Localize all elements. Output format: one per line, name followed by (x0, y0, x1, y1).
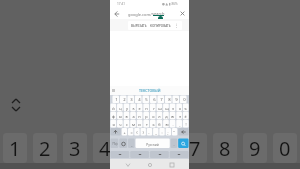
button[interactable]: ц (117, 104, 124, 112)
staticText: б (158, 122, 161, 127)
button[interactable]: = (128, 128, 134, 136)
button[interactable]: 8 (165, 96, 173, 104)
button[interactable]: ш (156, 104, 163, 112)
button[interactable]: ы (117, 112, 124, 120)
button[interactable]: о (150, 112, 157, 120)
button[interactable]: 7 (183, 133, 207, 163)
button[interactable]: ъ (182, 104, 189, 112)
button[interactable]: Русский (135, 139, 170, 149)
button[interactable]: ь (150, 120, 157, 128)
button[interactable]: ) (140, 128, 146, 136)
button[interactable]: 1 (112, 96, 120, 104)
button[interactable]: т (143, 120, 150, 128)
button[interactable]: _ (153, 128, 159, 136)
button[interactable]: 9 (243, 133, 267, 163)
button[interactable]: 4 (93, 133, 117, 163)
button[interactable]: 0 (180, 96, 188, 104)
staticText: 6 (159, 135, 171, 162)
button[interactable]: - (146, 128, 152, 136)
button[interactable]: . (169, 120, 176, 128)
button[interactable]: з (169, 104, 176, 112)
button[interactable]: Key (169, 151, 189, 158)
staticText: : (161, 130, 163, 135)
button[interactable]: , (176, 120, 183, 128)
button[interactable]: Key (110, 151, 130, 158)
staticText: Русский (146, 142, 159, 146)
button[interactable]: е (136, 104, 143, 112)
button[interactable]: 2 (120, 96, 128, 104)
staticText: 8 (168, 97, 171, 103)
button[interactable]: 1 (3, 133, 27, 163)
button[interactable]: 6 (150, 96, 158, 104)
button[interactable]: 3 (127, 96, 135, 104)
button[interactable]: Expand keyboard (7, 96, 25, 114)
button[interactable]: Search (178, 139, 189, 149)
button[interactable]: ?1☺ (110, 139, 119, 149)
button[interactable]: Back (123, 160, 132, 169)
button[interactable]: ! (182, 120, 189, 128)
button[interactable]: ф (110, 112, 117, 120)
staticText: 2 (39, 135, 51, 162)
button[interactable]: ю (163, 120, 170, 128)
button[interactable]: . (170, 139, 178, 149)
button[interactable]: к (130, 104, 137, 112)
button[interactable]: " (171, 128, 177, 136)
button[interactable]: 4 (135, 96, 143, 104)
button[interactable]: 5 (123, 133, 147, 163)
button[interactable]: ; (165, 128, 171, 136)
staticText: ъ (184, 106, 187, 111)
button[interactable]: р (143, 112, 150, 120)
button[interactable]: б (156, 120, 163, 128)
staticText: й (112, 106, 115, 111)
button[interactable]: и (136, 120, 143, 128)
button[interactable]: 5 (142, 96, 150, 104)
button[interactable]: 3 (63, 133, 87, 163)
button[interactable]: э (176, 112, 183, 120)
button[interactable]: Close (178, 9, 187, 18)
button[interactable]: с (123, 120, 130, 128)
button[interactable]: Backspace (178, 128, 189, 136)
staticText: 3 (130, 97, 133, 103)
button[interactable]: 6 (153, 133, 177, 163)
button[interactable]: м (130, 120, 137, 128)
button[interactable]: д (163, 112, 170, 120)
button[interactable]: Recents (167, 160, 176, 169)
button[interactable]: 7 (157, 96, 165, 104)
button[interactable]: 2 (33, 133, 57, 163)
button[interactable]: щ (163, 104, 170, 112)
button[interactable]: Home (145, 160, 154, 169)
button[interactable]: я (110, 120, 117, 128)
staticText: 9 (175, 97, 178, 103)
button[interactable]: ж (169, 112, 176, 120)
staticText: 9 (249, 135, 261, 162)
button[interactable]: + (121, 128, 127, 136)
button[interactable]: Key (150, 151, 170, 158)
button[interactable]: ч (117, 120, 124, 128)
button[interactable]: Back (112, 9, 121, 18)
button[interactable]: ВЫРЕЗАТЬ (131, 23, 179, 28)
button[interactable]: у (123, 104, 130, 112)
button[interactable]: п (136, 112, 143, 120)
staticText: г (153, 106, 155, 111)
button[interactable]: г (150, 104, 157, 112)
staticText: ! (185, 122, 187, 127)
button[interactable]: ё (182, 112, 189, 120)
staticText: 17:41 (117, 2, 126, 6)
button[interactable]: х (176, 104, 183, 112)
button[interactable]: , (128, 139, 136, 149)
staticText: ч (119, 122, 122, 127)
button[interactable]: Key (130, 151, 150, 158)
button[interactable]: а (130, 112, 137, 120)
staticText: 3 (69, 135, 81, 162)
button[interactable]: н (143, 104, 150, 112)
button[interactable]: 9 (172, 96, 180, 104)
button[interactable]: Emoji (119, 139, 128, 149)
button[interactable]: в (123, 112, 130, 120)
button[interactable]: Shift (110, 128, 121, 136)
button[interactable]: 0 (273, 133, 297, 163)
button[interactable]: й (110, 104, 117, 112)
button[interactable]: л (156, 112, 163, 120)
button[interactable]: : (159, 128, 165, 136)
button[interactable]: 8 (213, 133, 237, 163)
button[interactable]: ( (134, 128, 140, 136)
